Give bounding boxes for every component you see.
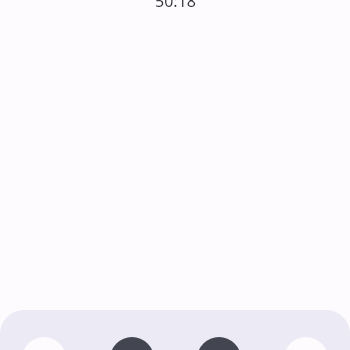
staticText: 50:18 (155, 0, 196, 12)
button[interactable]: Previous track (22, 337, 66, 350)
button[interactable]: Fast forward (197, 337, 241, 350)
button[interactable]: Next track (284, 337, 328, 350)
button[interactable]: Rewind (110, 337, 154, 350)
